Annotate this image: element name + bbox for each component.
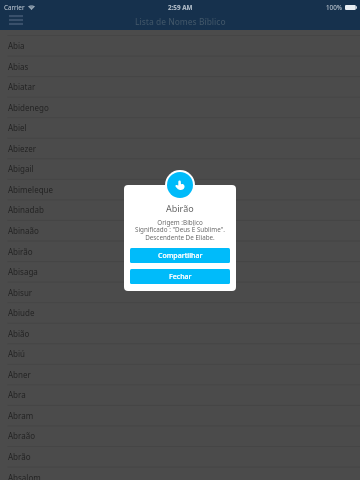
staticText: Abisaga — [8, 266, 38, 277]
button[interactable]: Menu — [3, 12, 29, 28]
staticText: Abiatar — [8, 81, 36, 92]
staticText: Lista de Nomes Bíblico — [135, 16, 226, 27]
staticText: Abião — [8, 328, 30, 339]
staticText: Abrão — [8, 451, 31, 462]
staticText: Abirão — [8, 246, 33, 257]
staticText: Abisur — [8, 287, 33, 298]
button[interactable]: Fechar — [130, 269, 230, 284]
staticText: Abias — [8, 61, 29, 72]
staticText: Abia — [8, 40, 25, 51]
staticText: Abigail — [8, 163, 34, 174]
staticText: Abimeleque — [8, 184, 54, 195]
button[interactable]: Abinadab — [0, 199, 360, 220]
staticText: Abiude — [8, 307, 35, 318]
staticText: Abidenego — [8, 102, 49, 113]
button[interactable]: Abirão — [0, 241, 360, 262]
staticText: Abiel — [8, 122, 27, 133]
staticText: Abirão — [166, 202, 194, 214]
staticText: Abraão — [8, 430, 35, 441]
staticText: Abram — [8, 410, 34, 421]
staticText: 100% — [326, 3, 343, 12]
staticText: Absalom — [8, 472, 41, 480]
button[interactable]: Abisur — [0, 282, 360, 303]
staticText: Compartilhar — [158, 251, 203, 261]
staticText: Origem :Bíblico Significado : "Deus É Su… — [135, 218, 225, 242]
button[interactable]: Abisaga — [0, 261, 360, 282]
button[interactable]: Abigail — [0, 158, 360, 179]
staticText: Abinaão — [8, 225, 39, 236]
button[interactable]: Abimeleque — [0, 179, 360, 200]
button[interactable]: Compartilhar — [130, 248, 230, 263]
staticText: 2:59 AM — [168, 3, 193, 12]
staticText: Abner — [8, 369, 31, 380]
staticText: Carrier — [4, 3, 25, 12]
button[interactable]: Abidenego — [0, 97, 360, 118]
staticText: Abra — [8, 389, 26, 400]
button[interactable]: Abinaão — [0, 220, 360, 241]
staticText: Abiú — [8, 348, 26, 359]
staticText: Abinadab — [8, 204, 44, 215]
staticText: Fechar — [169, 272, 192, 282]
staticText: Abiezer — [8, 143, 37, 154]
button[interactable]: Absalom — [0, 467, 360, 480]
